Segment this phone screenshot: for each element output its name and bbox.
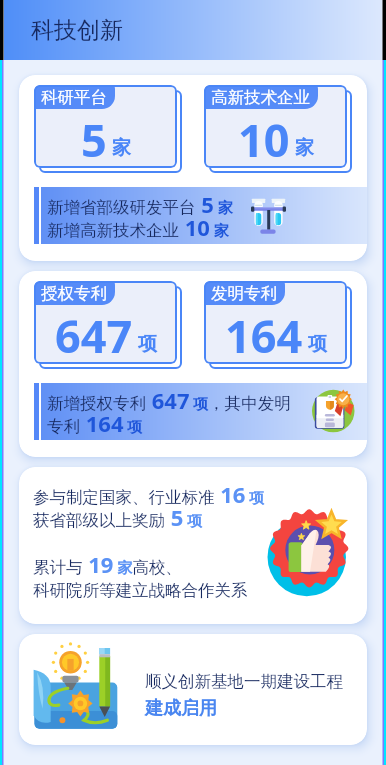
staticText: 新增高新技术企业 10 家 <box>47 212 229 242</box>
staticText: 5 <box>81 109 107 168</box>
button[interactable]: 顺义创新基地一期建设工程 <box>19 634 367 745</box>
staticText: 专利 164 项 <box>47 408 143 438</box>
other: Patent certificate <box>312 392 355 430</box>
staticText: 新增省部级研发平台 5 家 <box>47 189 233 219</box>
staticText: 科技创新 <box>31 16 123 45</box>
staticText: 授权专利 <box>41 283 107 304</box>
staticText: 647 <box>55 305 133 364</box>
staticText: 顺义创新基地一期建设工程 <box>145 671 343 692</box>
staticText: 项 <box>138 332 157 356</box>
staticText: 10 <box>238 109 290 168</box>
staticText: 参与制定国家、行业标准 16 项 获省部级以上奖励 5 项 累计与 19 家高校… <box>33 479 265 601</box>
staticText: 家 <box>112 136 131 160</box>
staticText: 164 <box>225 305 303 364</box>
button[interactable]: 科研平台 <box>19 75 367 261</box>
staticText: 建成启用 <box>145 697 217 720</box>
staticText: 家 <box>295 136 314 160</box>
button[interactable]: 参与制定国家、行业标准 16 项 获省部级以上奖励 5 项 累计与 19 家高校… <box>19 467 367 624</box>
staticText: 科研平台 <box>41 87 107 108</box>
staticText: 新增授权专利 647 项，其中发明 <box>47 385 291 415</box>
staticText: 发明专利 <box>211 283 277 304</box>
other: Research platforms <box>251 198 286 234</box>
staticText: 项 <box>308 332 327 356</box>
button[interactable]: 授权专利 <box>19 271 367 457</box>
staticText: 高新技术企业 <box>211 87 310 108</box>
